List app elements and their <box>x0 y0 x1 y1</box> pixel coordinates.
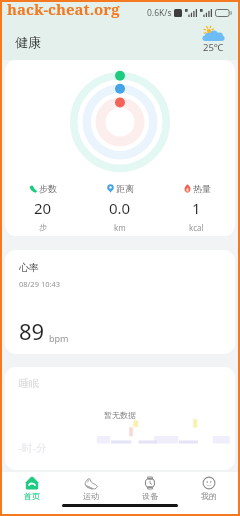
staticText: 步 <box>39 222 47 232</box>
staticText: 1 <box>192 198 201 218</box>
button[interactable]: 设备 <box>120 472 179 501</box>
button[interactable]: Weather 25 degrees <box>202 28 225 54</box>
staticText: hack-cheat.org <box>7 0 120 19</box>
button[interactable]: 步数 <box>5 183 81 232</box>
button[interactable]: 睡眠 <box>5 367 235 470</box>
staticText: 89 <box>19 316 45 346</box>
staticText: bpm <box>49 332 69 344</box>
button[interactable]: 我的 <box>179 472 238 501</box>
staticText: 睡眠 <box>19 377 39 390</box>
staticText: 我的 <box>201 491 217 501</box>
staticText: 距离 <box>116 183 134 194</box>
staticText: 0.0 <box>109 198 131 218</box>
staticText: 0.6K/s <box>147 7 172 19</box>
button[interactable]: 距离 <box>81 183 158 233</box>
button[interactable]: 首页 <box>2 472 61 501</box>
staticText: 设备 <box>142 491 158 501</box>
staticText: -时-分 <box>18 440 48 455</box>
staticText: 暂无数据 <box>104 410 136 420</box>
button[interactable]: 心率 <box>5 250 235 354</box>
staticText: 步数 <box>39 183 57 194</box>
button[interactable]: 热量 <box>158 183 235 233</box>
staticText: 运动 <box>83 491 99 501</box>
staticText: 20 <box>34 198 52 218</box>
button[interactable]: 运动 <box>61 472 120 501</box>
staticText: kcal <box>189 222 204 233</box>
staticText: 热量 <box>193 183 211 194</box>
button[interactable]: 步数 <box>5 60 235 236</box>
staticText: 健康 <box>15 34 41 50</box>
staticText: km <box>114 222 126 233</box>
staticText: 首页 <box>24 491 40 501</box>
staticText: 08/29 10:43 <box>19 279 61 289</box>
staticText: 25℃ <box>203 41 224 54</box>
staticText: 心率 <box>19 261 39 274</box>
